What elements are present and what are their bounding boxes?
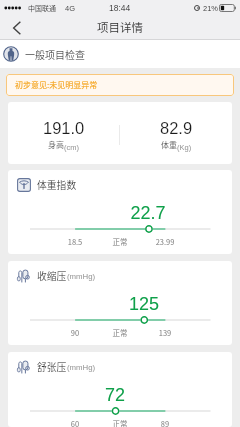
staticText: 4G	[65, 4, 76, 12]
button[interactable]: 体重指数	[8, 170, 232, 254]
staticText: 正常	[8, 236, 232, 247]
staticText: 正常	[8, 327, 232, 338]
staticText: 191.0	[43, 119, 85, 137]
staticText: (mmHg)	[67, 272, 96, 281]
staticText: 中国联通	[28, 3, 56, 13]
staticText: 收缩压	[37, 269, 67, 283]
staticText: 身高	[48, 139, 64, 151]
button[interactable]: 舒张压	[8, 352, 232, 427]
staticText: 18:44	[109, 3, 131, 12]
staticText: (mmHg)	[67, 363, 96, 372]
staticText: 60	[8, 418, 187, 427]
button[interactable]: 收缩压	[8, 261, 232, 345]
staticText: 体重指数	[37, 178, 77, 192]
staticText: 23.99	[53, 236, 232, 247]
staticText: 125	[32, 294, 232, 314]
button[interactable]: 返回	[5, 16, 29, 40]
staticText: 18.5	[8, 236, 187, 247]
staticText: 体重	[161, 139, 177, 151]
staticText: 21%	[203, 4, 219, 12]
staticText: 89	[53, 418, 232, 427]
staticText: 72	[8, 385, 227, 405]
staticText: 一般项目检查	[25, 47, 85, 61]
staticText: 22.7	[36, 203, 232, 223]
staticText: 初步意见:未见明显异常	[15, 79, 98, 91]
staticText: 139	[53, 327, 232, 338]
staticText: 项目详情	[97, 19, 143, 36]
staticText: (Kg)	[177, 143, 192, 151]
staticText: 舒张压	[37, 360, 67, 374]
staticText: (cm)	[64, 143, 79, 151]
button[interactable]: 一般项目检查	[0, 40, 240, 68]
staticText: 正常	[8, 418, 232, 427]
button[interactable]: 初步意见:未见明显异常	[6, 74, 234, 96]
staticText: 82.9	[160, 119, 193, 137]
staticText: 90	[8, 327, 187, 338]
